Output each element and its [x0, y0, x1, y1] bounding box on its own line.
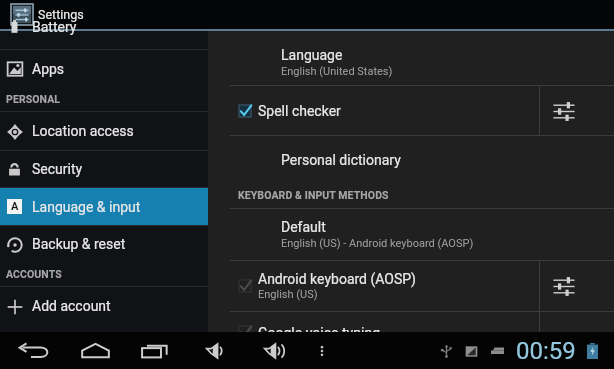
staticText: Location access	[32, 123, 134, 139]
staticText: Language	[281, 47, 343, 63]
staticText: Add account	[32, 298, 111, 314]
button[interactable]: Location access	[0, 112, 208, 150]
button[interactable]: Add account	[0, 287, 208, 325]
button[interactable]: Spell checker	[540, 86, 588, 136]
button[interactable]: Language	[208, 39, 614, 85]
staticText: Battery	[32, 19, 77, 35]
staticText: Google voice typing	[258, 325, 381, 341]
staticText: Default	[281, 219, 326, 235]
staticText: Backup & reset	[32, 236, 126, 252]
staticText: Apps	[32, 61, 65, 77]
button[interactable]: Back	[14, 332, 54, 369]
button[interactable]: Android keyboard settings	[540, 261, 588, 311]
button[interactable]: A	[0, 188, 208, 225]
button[interactable]: Volume up	[258, 332, 292, 369]
button[interactable]: Android keyboard (AOSP)	[208, 261, 539, 311]
button[interactable]: Default	[208, 209, 614, 260]
staticText: English (US)	[258, 288, 318, 301]
button[interactable]: Spell checker	[208, 86, 539, 136]
staticText: English (United States)	[281, 65, 393, 78]
staticText: ACCOUNTS	[6, 268, 62, 280]
button[interactable]: Google voice typing	[208, 312, 614, 332]
staticText: Spell checker	[258, 103, 341, 119]
button[interactable]: Personal dictionary	[208, 137, 614, 183]
staticText: Settings	[38, 7, 84, 22]
button[interactable]: Security	[0, 151, 208, 187]
staticText: A	[11, 200, 19, 213]
button[interactable]: Backup & reset	[0, 226, 208, 262]
staticText: English (US) - Android keyboard (AOSP)	[281, 237, 474, 250]
button[interactable]: More options	[310, 332, 334, 369]
button[interactable]: Battery	[0, 31, 208, 49]
button[interactable]: Apps	[0, 50, 208, 87]
staticText: KEYBOARD & INPUT METHODS	[238, 189, 389, 201]
button[interactable]: Recents	[137, 332, 171, 369]
staticText: Language & input	[32, 199, 141, 215]
staticText: Security	[32, 161, 83, 177]
staticText: Android keyboard (AOSP)	[258, 271, 416, 287]
staticText: Personal dictionary	[281, 152, 401, 168]
button[interactable]: Volume down	[199, 332, 229, 369]
staticText: 00:59	[516, 337, 576, 365]
staticText: PERSONAL	[6, 93, 61, 105]
button[interactable]: Home	[76, 332, 114, 369]
